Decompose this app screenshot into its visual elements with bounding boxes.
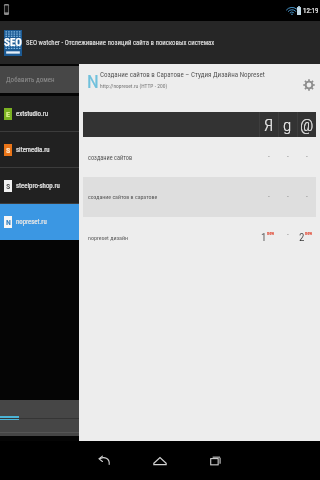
staticText: SEO (4, 36, 22, 49)
staticText: S (6, 182, 11, 191)
staticText: - (306, 153, 308, 161)
staticText: extstudio.ru (16, 110, 49, 118)
staticText: Создание сайтов в Саратове – Студия Диза… (100, 71, 265, 79)
button[interactable]: S (0, 168, 79, 203)
button[interactable]: Back (76, 441, 132, 480)
staticText: @ (300, 115, 314, 135)
staticText: 2 (299, 231, 305, 244)
staticText: sitemedia.ru (16, 146, 50, 154)
button[interactable]: E (0, 96, 79, 131)
staticText: SEO watcher - Отслеживание позиций сайта… (26, 39, 215, 47)
button[interactable]: nopreset дизайн (83, 217, 316, 257)
button[interactable]: Home (132, 441, 188, 480)
button[interactable]: Settings (298, 66, 320, 104)
staticText: - (287, 231, 289, 239)
button[interactable]: Добавить домен (0, 66, 79, 93)
staticText: - (268, 153, 270, 161)
staticText: g (283, 115, 292, 135)
staticText: N (6, 218, 11, 227)
staticText: nopreset.ru (16, 218, 47, 226)
button[interactable]: создание сайтов в саратове (83, 177, 316, 217)
button[interactable]: S (0, 132, 79, 167)
button[interactable]: @ (297, 112, 316, 137)
staticText: new (267, 231, 275, 236)
staticText: nopreset дизайн (88, 234, 129, 241)
button[interactable]: N (0, 204, 79, 240)
staticText: 12:19 (303, 7, 319, 15)
staticText: - (268, 193, 270, 201)
button[interactable]: Recents (188, 441, 244, 480)
staticText: 1 (261, 231, 267, 244)
staticText: Добавить домен (6, 76, 55, 84)
staticText: new (305, 231, 313, 236)
button[interactable]: g (278, 112, 297, 137)
staticText: - (287, 193, 289, 201)
staticText: Я (264, 115, 274, 135)
staticText: - (287, 153, 289, 161)
staticText: E (6, 110, 10, 119)
staticText: steelpro-shop.ru (16, 182, 60, 190)
staticText: N (87, 70, 99, 92)
staticText: создание сайтов (88, 154, 133, 161)
staticText: - (306, 193, 308, 201)
button[interactable]: создание сайтов (83, 137, 316, 177)
staticText: создание сайтов в саратове (88, 194, 158, 201)
button[interactable]: Я (259, 112, 278, 137)
staticText: S (6, 146, 11, 155)
staticText: http://nopreset.ru (HTTP - 200) (100, 83, 168, 89)
